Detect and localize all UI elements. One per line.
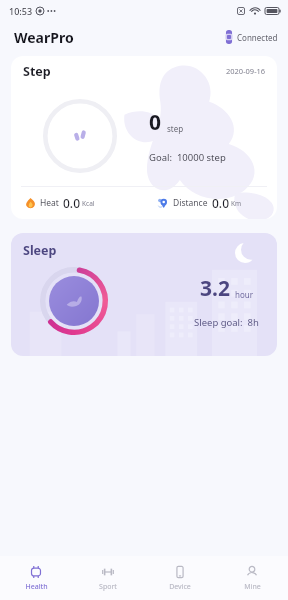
button[interactable]: Health xyxy=(0,556,72,600)
staticText: Heat xyxy=(40,197,59,209)
staticText: Kcal xyxy=(82,199,95,208)
staticText: 0.0 xyxy=(63,195,80,211)
staticText: Connected xyxy=(237,32,278,43)
staticText: hour xyxy=(235,289,254,300)
staticText: Km xyxy=(231,199,242,208)
button[interactable]: Sleep xyxy=(11,233,277,356)
staticText: 2020-09-16 xyxy=(226,66,266,76)
button[interactable]: Distance xyxy=(144,187,277,219)
button[interactable]: Sport xyxy=(72,556,144,600)
staticText: 0 xyxy=(149,108,162,137)
button[interactable]: Step xyxy=(11,56,277,219)
staticText: 3.2 xyxy=(200,274,230,303)
staticText: Step xyxy=(23,63,51,80)
staticText: Health xyxy=(25,582,48,592)
staticText: Device xyxy=(169,582,191,592)
staticText: Sport xyxy=(99,582,117,592)
staticText: Sleep goal: 8h xyxy=(194,316,259,329)
staticText: 0.0 xyxy=(212,195,229,211)
staticText: Goal: 10000 step xyxy=(149,151,226,164)
staticText: 10:53 xyxy=(9,5,33,17)
staticText: step xyxy=(167,123,184,134)
staticText: Mine xyxy=(244,582,261,592)
staticText: Distance xyxy=(173,197,208,209)
button[interactable]: Device xyxy=(144,556,216,600)
staticText: Sleep xyxy=(23,242,57,259)
button[interactable]: Mine xyxy=(216,556,288,600)
button[interactable]: Heat xyxy=(11,187,144,219)
button[interactable]: Connected device xyxy=(223,27,280,47)
staticText: WearPro xyxy=(14,28,74,47)
